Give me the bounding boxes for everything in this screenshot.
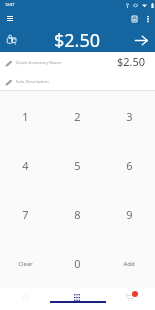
staticText: 4 [22,158,29,173]
button[interactable]: More options [141,12,154,25]
staticText: 1 [22,109,29,124]
button[interactable]: 7 [0,190,51,239]
button[interactable]: 8 [51,190,103,239]
button[interactable]: Clear [0,239,51,288]
button[interactable]: Quick Inventory Name [0,52,155,72]
staticText: 7 [22,207,29,222]
button[interactable]: Point of sale [2,31,20,49]
button[interactable]: 6 [103,141,155,190]
staticText: Sale Description [16,78,49,84]
button[interactable]: 1 [0,91,51,141]
staticText: $2.50 [54,28,101,52]
staticText: 9 [126,207,133,222]
button[interactable]: 2 [51,91,103,141]
button[interactable]: 0 [51,239,103,288]
staticText: 3 [126,109,133,124]
staticText: 6 [126,158,133,173]
staticText: $2.50 [117,54,146,69]
staticText: Clear [18,260,33,268]
button[interactable]: Cart [103,291,155,303]
button[interactable]: 9 [103,190,155,239]
button[interactable]: Next [132,31,150,49]
button[interactable]: 5 [51,141,103,190]
button[interactable]: Add [103,239,155,288]
button[interactable]: 3 [103,91,155,141]
button[interactable]: Menu [3,12,16,25]
button[interactable]: Apps [51,291,103,303]
staticText: 0 [74,256,81,271]
button[interactable]: 4 [0,141,51,190]
button[interactable]: Sale Description [0,72,155,90]
staticText: Add [123,260,135,268]
staticText: 8 [74,207,81,222]
staticText: 12:07 [5,2,15,7]
staticText: Quick Inventory Name [16,59,62,65]
button[interactable]: Notes [128,12,141,25]
staticText: 5 [74,158,81,173]
staticText: 2 [74,109,81,124]
button[interactable]: Back [0,291,51,303]
